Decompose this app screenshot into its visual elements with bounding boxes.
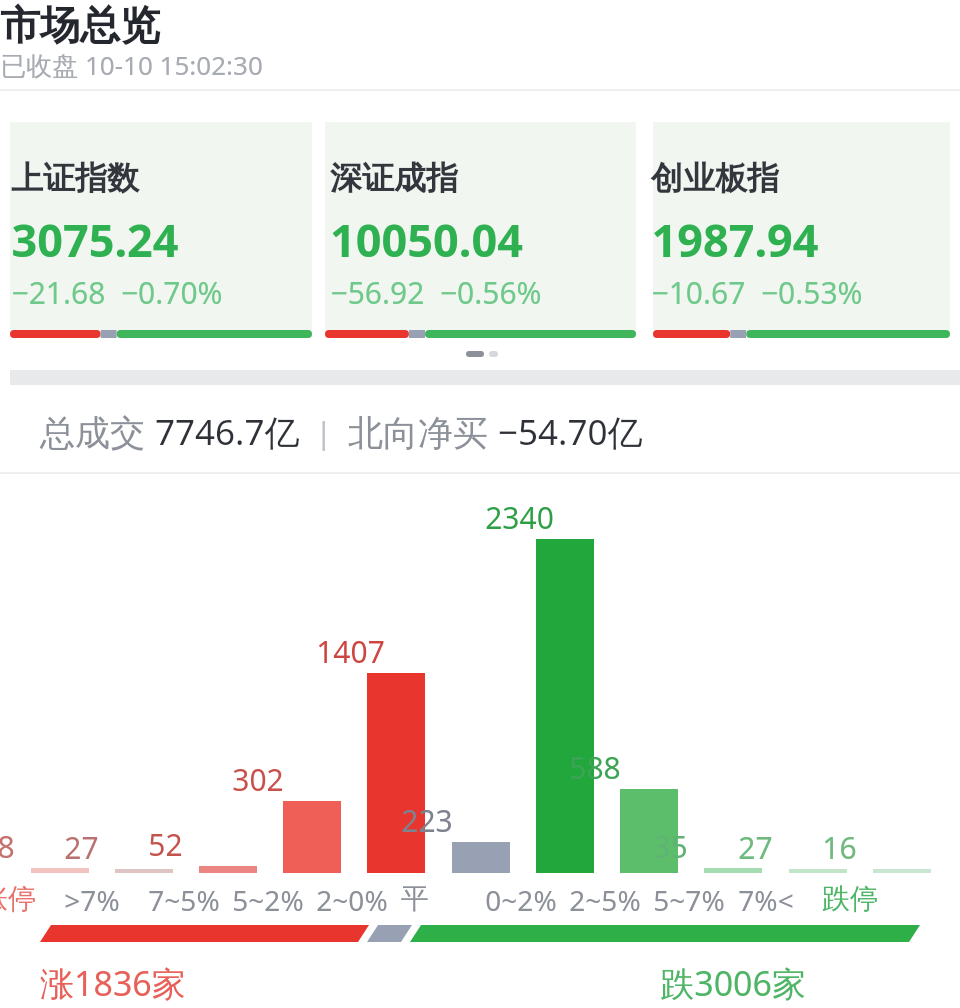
button[interactable] xyxy=(651,122,951,338)
staticText: 上证指数 xyxy=(11,158,139,198)
staticText: 2~5% xyxy=(569,881,641,919)
staticText: 跌停 xyxy=(822,881,878,916)
staticText: 涨停 xyxy=(0,881,36,916)
staticText: 北向净买 xyxy=(348,408,498,456)
staticText: 1407 xyxy=(316,631,385,672)
staticText: −21.68 −0.70% xyxy=(11,272,223,313)
staticText: 平 xyxy=(401,881,429,916)
staticText: 创业板指 xyxy=(651,158,779,198)
staticText: 1987.94 xyxy=(651,209,819,270)
staticText: 16 xyxy=(822,827,857,868)
staticText: 7~5% xyxy=(148,881,220,919)
staticText: 223 xyxy=(401,800,453,841)
staticText: 48 xyxy=(0,826,15,867)
staticText: 5~7% xyxy=(653,881,725,919)
staticText: −54.70亿 xyxy=(498,408,643,456)
staticText: 总成交 xyxy=(40,408,155,456)
staticText: 27 xyxy=(64,827,99,868)
staticText: >7% xyxy=(64,881,120,919)
staticText: 35 xyxy=(653,826,688,867)
staticText: 2340 xyxy=(485,497,554,538)
staticText: 0~2% xyxy=(485,881,557,919)
staticText: 588 xyxy=(569,747,621,788)
staticText: 跌3006家 xyxy=(660,960,806,1006)
button[interactable]: 总成交 xyxy=(40,408,740,456)
staticText: 10050.04 xyxy=(330,209,523,270)
staticText: 52 xyxy=(148,824,183,865)
staticText: 5~2% xyxy=(232,881,304,919)
staticText: 7%< xyxy=(738,881,794,919)
staticText: 已收盘 10-10 15:02:30 xyxy=(0,47,263,83)
staticText: 7746.7亿 xyxy=(155,408,300,456)
staticText: 2~0% xyxy=(316,881,388,919)
staticText: 市场总览 xyxy=(0,0,160,50)
button[interactable] xyxy=(330,122,630,338)
staticText: 302 xyxy=(232,759,284,800)
staticText: −56.92 −0.56% xyxy=(330,272,542,313)
staticText: 3075.24 xyxy=(11,209,179,270)
staticText: 涨1836家 xyxy=(40,960,186,1006)
staticText: 深证成指 xyxy=(330,158,458,198)
staticText: | xyxy=(300,412,348,453)
staticText: 27 xyxy=(738,827,773,868)
button[interactable] xyxy=(11,122,311,338)
staticText: −10.67 −0.53% xyxy=(651,272,863,313)
